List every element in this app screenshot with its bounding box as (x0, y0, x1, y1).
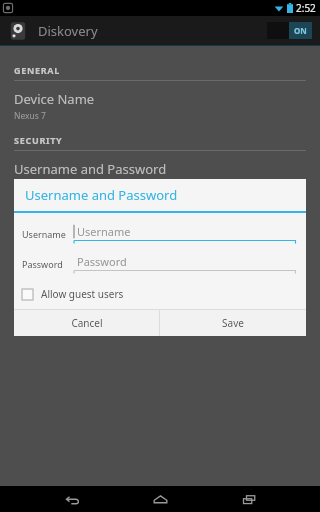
staticText: SECURITY (14, 134, 63, 146)
staticText: Nexus 7 (14, 110, 46, 122)
staticText: ON (294, 25, 307, 36)
button[interactable]: Recent apps (232, 486, 266, 512)
staticText: 2:52 (296, 1, 316, 15)
button[interactable]: Save (160, 310, 306, 336)
staticText: Cancel (71, 316, 103, 330)
staticText: GENERAL (14, 64, 60, 76)
button[interactable]: Device Name (14, 88, 306, 124)
staticText: ADD-ONS (14, 204, 61, 216)
staticText: Device Name (14, 90, 95, 108)
button[interactable]: Cancel (14, 310, 159, 336)
staticText: Username (22, 228, 74, 240)
staticText: Password (22, 258, 74, 270)
staticText: Configure username and password to acces… (14, 180, 238, 192)
staticText: Username (77, 224, 131, 239)
button[interactable]: Username and Password (14, 158, 306, 194)
button[interactable]: Toggle service on (267, 22, 312, 39)
staticText: Username and Password (25, 186, 178, 204)
staticText: Save (222, 316, 244, 330)
staticText: Diskovery (38, 22, 98, 40)
button[interactable]: Username (74, 223, 296, 244)
staticText: Allow guest users (41, 287, 124, 301)
button[interactable]: Back (55, 486, 89, 512)
button[interactable]: Home (143, 486, 177, 512)
staticText: Password (77, 254, 127, 269)
button[interactable]: Allow guest users (14, 285, 306, 309)
button[interactable]: Password (74, 253, 296, 274)
staticText: Username and Password (14, 160, 167, 178)
